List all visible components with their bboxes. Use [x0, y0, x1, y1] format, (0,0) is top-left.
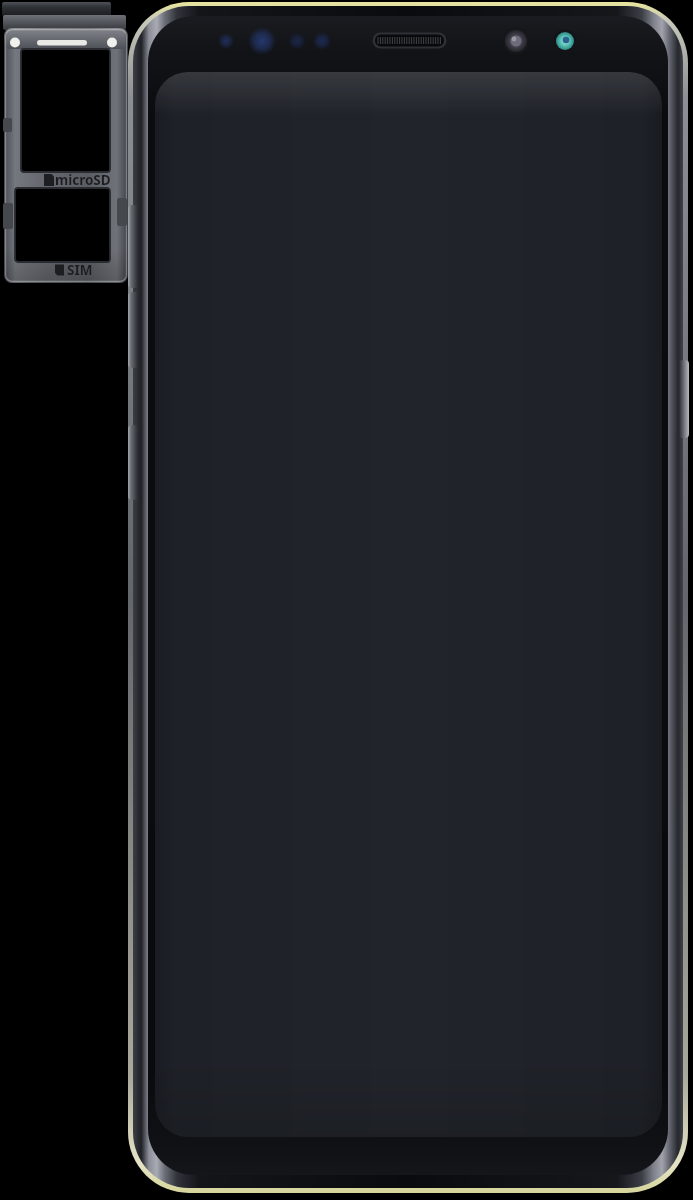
- button[interactable]: Galaxy S8 phone with SIM and microSD tra…: [0, 0, 693, 1200]
